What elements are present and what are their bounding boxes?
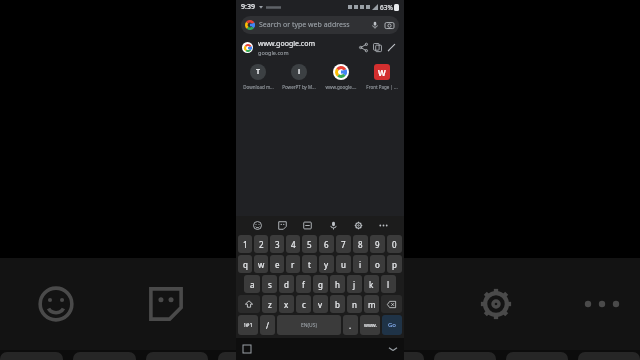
button[interactable]: f <box>296 275 311 293</box>
staticText: i <box>359 259 362 270</box>
button[interactable]: u <box>336 255 351 273</box>
staticText: s <box>268 279 272 290</box>
button[interactable]: . <box>343 315 358 335</box>
button[interactable]: n <box>347 295 362 313</box>
button[interactable]: r <box>286 255 300 273</box>
staticText: www. <box>364 322 377 329</box>
button[interactable]: Voice search <box>369 19 381 31</box>
staticText: T <box>256 67 261 77</box>
button[interactable]: b <box>330 295 345 313</box>
staticText: 9 <box>375 239 380 250</box>
staticText: 6 <box>324 239 329 250</box>
button[interactable]: Emoji <box>249 217 265 233</box>
button[interactable]: Switch keyboard <box>241 343 253 355</box>
button[interactable]: 9 <box>370 235 385 253</box>
staticText: k <box>369 279 374 290</box>
button[interactable]: Stickers <box>274 217 290 233</box>
staticText: W <box>378 67 386 78</box>
button[interactable]: Shift <box>238 295 260 313</box>
staticText: v <box>318 299 323 310</box>
button[interactable]: 0 <box>387 235 402 253</box>
button[interactable]: !#1 <box>238 315 258 335</box>
button[interactable]: y <box>319 255 334 273</box>
button[interactable]: Voice input <box>325 217 341 233</box>
button[interactable]: w <box>254 255 268 273</box>
staticText: m <box>368 299 376 310</box>
staticText: e <box>275 259 280 270</box>
button[interactable]: z <box>262 295 277 313</box>
staticText: Search or type web address <box>259 20 369 30</box>
button[interactable]: q <box>238 255 252 273</box>
button[interactable]: a <box>244 275 260 293</box>
button[interactable]: d <box>279 275 294 293</box>
button[interactable]: m <box>364 295 379 313</box>
button[interactable]: s <box>262 275 277 293</box>
button[interactable]: Clipboard <box>299 217 315 233</box>
staticText: EN(US) <box>301 322 317 329</box>
button[interactable]: 3 <box>270 235 284 253</box>
staticText: p <box>392 259 397 270</box>
button[interactable]: www. <box>360 315 380 335</box>
staticText: u <box>341 259 346 270</box>
button[interactable]: Copy <box>370 40 384 54</box>
staticText: a <box>250 279 255 290</box>
staticText: Front Page | ... <box>366 84 398 90</box>
staticText: x <box>284 299 289 310</box>
staticText: 9:39 <box>241 2 255 12</box>
staticText: j <box>353 279 356 290</box>
button[interactable]: / <box>260 315 275 335</box>
button[interactable]: Hide keyboard <box>387 343 399 355</box>
button[interactable]: Share <box>356 40 370 54</box>
button[interactable]: k <box>364 275 379 293</box>
button[interactable]: Search or type web address <box>241 16 399 34</box>
button[interactable]: EN(US) <box>277 315 341 335</box>
button[interactable]: 7 <box>336 235 351 253</box>
button[interactable]: www.google.... <box>322 62 360 90</box>
staticText: !#1 <box>244 321 253 329</box>
button[interactable]: j <box>347 275 362 293</box>
button[interactable]: Keyboard settings <box>350 217 366 233</box>
staticText: 5 <box>307 239 312 250</box>
staticText: f <box>302 279 305 290</box>
button[interactable]: t <box>302 255 317 273</box>
button[interactable]: i <box>280 62 318 90</box>
button[interactable]: Lens search <box>383 19 395 31</box>
staticText: Go <box>388 321 396 329</box>
button[interactable]: W <box>363 62 401 90</box>
button[interactable]: g <box>313 275 328 293</box>
staticText: d <box>284 279 289 290</box>
button[interactable]: o <box>370 255 385 273</box>
button[interactable]: More options <box>375 217 391 233</box>
staticText: h <box>335 279 340 290</box>
button[interactable]: 6 <box>319 235 334 253</box>
staticText: z <box>268 299 272 310</box>
button[interactable]: h <box>330 275 345 293</box>
button[interactable]: www.google.com <box>236 36 404 58</box>
button[interactable]: p <box>387 255 402 273</box>
staticText: Download m... <box>243 84 274 90</box>
staticText: i <box>298 67 301 77</box>
button[interactable]: T <box>239 62 277 90</box>
button[interactable]: 8 <box>353 235 368 253</box>
button[interactable]: 2 <box>254 235 268 253</box>
staticText: c <box>302 299 306 310</box>
staticText: l <box>387 279 390 290</box>
staticText: 63% <box>380 3 393 12</box>
staticText: g <box>318 279 323 290</box>
button[interactable]: x <box>279 295 294 313</box>
staticText: 1 <box>243 239 248 250</box>
button[interactable]: 1 <box>238 235 252 253</box>
button[interactable]: l <box>381 275 396 293</box>
button[interactable]: Edit <box>384 40 398 54</box>
button[interactable]: c <box>296 295 311 313</box>
staticText: google.com <box>258 49 289 56</box>
button[interactable]: Go <box>382 315 402 335</box>
button[interactable]: i <box>353 255 368 273</box>
staticText: / <box>266 320 269 331</box>
button[interactable]: 4 <box>286 235 300 253</box>
button[interactable]: e <box>270 255 284 273</box>
button[interactable]: v <box>313 295 328 313</box>
staticText: y <box>324 259 329 270</box>
button[interactable]: 5 <box>302 235 317 253</box>
button[interactable]: Backspace <box>381 295 402 313</box>
